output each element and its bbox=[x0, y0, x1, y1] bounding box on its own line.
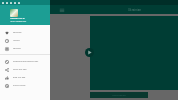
staticText: Privacy policy bbox=[13, 84, 26, 87]
staticText: Neuro Development bbox=[10, 20, 27, 22]
button[interactable]: Play bbox=[85, 48, 94, 57]
button[interactable]: Download app without ads bbox=[0, 57, 50, 65]
button[interactable]: Open navigation drawer bbox=[58, 6, 66, 14]
staticText: Advertisement bbox=[112, 94, 126, 97]
button[interactable]: Settings bbox=[0, 44, 50, 52]
staticText: Share this app bbox=[13, 68, 27, 71]
staticText: Ukrainian bbox=[128, 8, 142, 12]
staticText: Translator Pro 4K bbox=[10, 17, 25, 19]
button[interactable]: Favorites bbox=[0, 28, 50, 36]
staticText: Download app without ads bbox=[13, 60, 39, 63]
button[interactable]: Privacy policy bbox=[0, 81, 50, 89]
staticText: Rate this app bbox=[13, 76, 26, 79]
staticText: Favorites bbox=[13, 31, 22, 34]
button[interactable]: History bbox=[0, 36, 50, 44]
staticText: History bbox=[13, 39, 20, 42]
button[interactable]: Rate this app bbox=[0, 73, 50, 81]
staticText: Settings bbox=[13, 47, 21, 50]
button[interactable]: Share this app bbox=[0, 65, 50, 73]
